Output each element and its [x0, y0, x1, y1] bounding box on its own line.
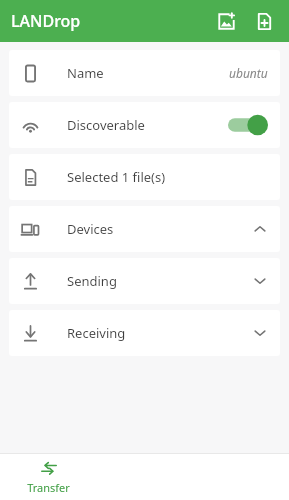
button[interactable]: Transfer [0, 459, 97, 495]
button[interactable]: Sending [9, 258, 280, 304]
staticText: Discoverable [67, 116, 228, 134]
staticText: Sending [67, 272, 252, 290]
button[interactable]: Discoverable toggle [228, 114, 268, 136]
button[interactable]: Selected 1 file(s) [9, 154, 280, 200]
button[interactable]: Add image [209, 4, 243, 38]
staticText: LANDrop [11, 10, 81, 32]
button[interactable]: Add file [247, 4, 281, 38]
staticText: Devices [67, 220, 252, 238]
button[interactable]: Receiving [9, 310, 280, 356]
button[interactable]: Name [9, 50, 280, 96]
staticText: Name [67, 64, 229, 82]
staticText: Receiving [67, 324, 252, 342]
staticText: ubuntu [229, 65, 268, 81]
button[interactable]: Devices [9, 206, 280, 252]
staticText: Transfer [27, 480, 70, 495]
button[interactable]: Discoverable [9, 102, 280, 148]
staticText: Selected 1 file(s) [67, 168, 268, 186]
